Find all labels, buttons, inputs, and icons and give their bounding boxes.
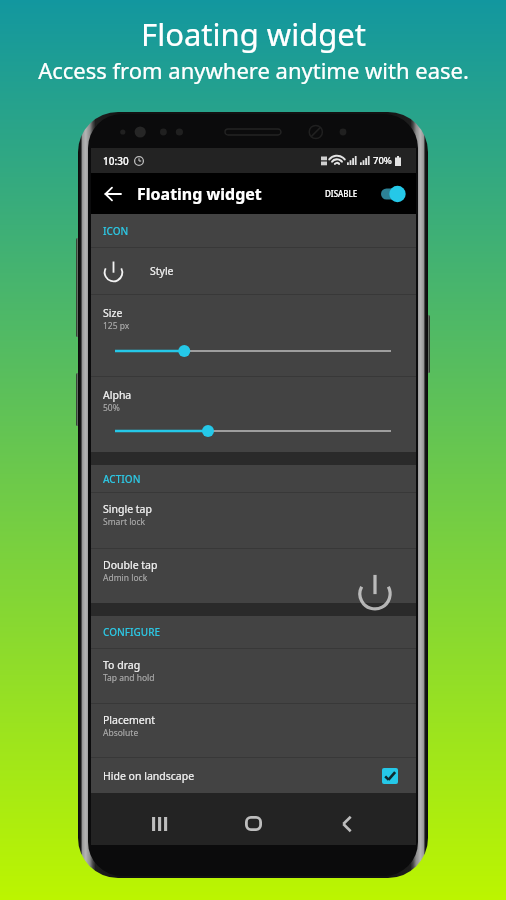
staticText: Floating widget <box>137 183 262 205</box>
staticText: CONFIGURE <box>103 625 161 639</box>
button[interactable]: To drag <box>91 649 416 703</box>
staticText: Smart lock <box>103 516 146 528</box>
staticText: Access from anywhere anytime with ease. <box>38 55 469 85</box>
staticText: DISABLE <box>325 188 358 199</box>
button[interactable]: Alpha <box>91 377 416 452</box>
button[interactable]: Back <box>91 173 135 214</box>
staticText: Single tap <box>103 502 152 516</box>
button[interactable]: Placement <box>91 704 416 757</box>
button[interactable]: Hide on landscape <box>91 758 416 793</box>
staticText: ICON <box>103 224 129 238</box>
staticText: 50% <box>103 402 120 414</box>
staticText: Style <box>150 264 174 278</box>
button[interactable]: Recents <box>113 802 206 845</box>
button[interactable]: Size <box>91 295 416 376</box>
staticText: Double tap <box>103 558 158 572</box>
staticText: Size <box>103 306 123 320</box>
staticText: ACTION <box>103 472 141 486</box>
staticText: Placement <box>103 713 155 727</box>
button[interactable]: Single tap <box>91 493 416 548</box>
button[interactable]: Enable floating widget <box>381 181 406 207</box>
staticText: To drag <box>103 658 141 672</box>
button[interactable]: Style <box>91 248 416 294</box>
button[interactable]: Back <box>300 802 394 845</box>
staticText: Admin lock <box>103 572 148 584</box>
staticText: 125 px <box>103 320 130 332</box>
button[interactable]: Double tap <box>91 549 416 603</box>
staticText: 10:30 <box>103 154 129 168</box>
staticText: Alpha <box>103 388 132 402</box>
staticText: Absolute <box>103 727 139 739</box>
staticText: 70% <box>373 154 392 167</box>
staticText: Tap and hold <box>103 672 155 684</box>
staticText: Floating widget <box>141 13 366 55</box>
button[interactable]: Home <box>206 802 300 845</box>
staticText: Hide on landscape <box>103 769 195 783</box>
button[interactable]: DISABLE <box>320 178 363 209</box>
button[interactable]: Floating widget <box>357 574 393 610</box>
